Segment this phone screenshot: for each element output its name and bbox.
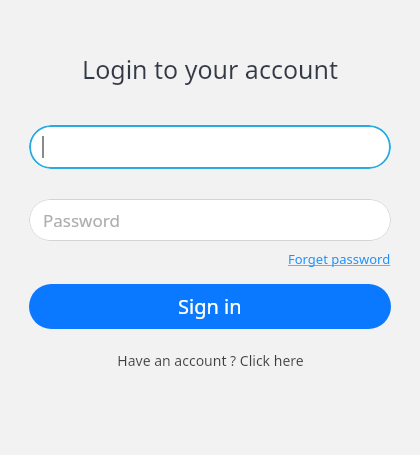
- staticText: Password: [43, 209, 120, 232]
- staticText: Forget password: [288, 250, 391, 268]
- button[interactable]: Email or username input field: [29, 125, 391, 169]
- staticText: Login to your account: [82, 52, 338, 86]
- button[interactable]: Sign in: [29, 284, 391, 329]
- button[interactable]: Have an account ? Click here: [109, 347, 312, 374]
- staticText: Sign in: [178, 293, 242, 320]
- button[interactable]: Forget password: [288, 250, 391, 268]
- button[interactable]: Password: [29, 199, 391, 241]
- staticText: Have an account ? Click here: [117, 351, 304, 370]
